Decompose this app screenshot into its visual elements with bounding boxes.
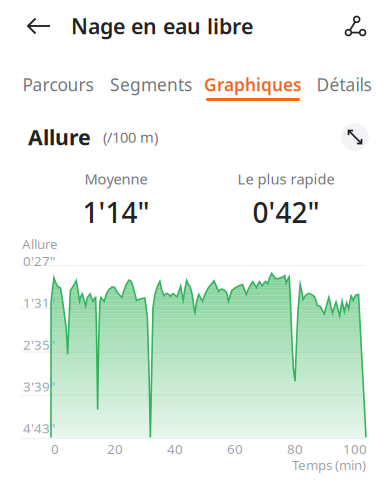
staticText: Graphiques [204,73,302,96]
staticText: 80 [287,440,303,458]
staticText: Détails [316,73,371,96]
button[interactable]: Parcours [13,52,103,107]
staticText: 1'31" [23,294,55,311]
staticText: Nage en eau libre [71,12,253,40]
staticText: 100 [343,440,367,458]
staticText: 4'43" [23,419,55,437]
staticText: Segments [110,73,192,96]
staticText: 1'14" [82,193,149,231]
staticText: 60 [227,440,243,458]
staticText: (/100 m) [91,127,158,147]
staticText: 0 [51,440,59,458]
button[interactable]: Segments [103,52,199,107]
staticText: Parcours [22,73,93,96]
staticText: 40 [167,440,183,458]
staticText: Le plus rapide [237,169,334,188]
staticText: Moyenne [84,169,147,188]
staticText: 0'42" [252,193,319,231]
staticText: Allure [28,123,91,151]
button[interactable]: Share [329,0,388,52]
staticText: Allure [22,235,58,253]
staticText: 20 [107,440,123,458]
staticText: Temps (min) [292,456,366,474]
staticText: 2'35" [23,336,55,353]
staticText: 3'39" [23,377,55,395]
button[interactable]: Back [0,0,71,52]
button[interactable]: Détails [307,52,381,107]
staticText: 0'27" [23,252,55,270]
button[interactable]: Graphiques [199,52,307,107]
button[interactable]: Expand chart [336,118,374,156]
